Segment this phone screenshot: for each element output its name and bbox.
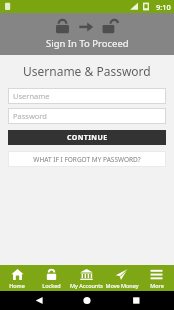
staticText: Username bbox=[13, 91, 50, 101]
staticText: Locked bbox=[42, 282, 61, 289]
button[interactable]: WHAT IF I FORGOT MY PASSWORD? bbox=[8, 151, 166, 167]
button[interactable]: Move Money bbox=[104, 265, 139, 291]
staticText: Password bbox=[13, 111, 47, 121]
button[interactable]: CONTINUE bbox=[8, 130, 166, 145]
staticText: WHAT IF I FORGOT MY PASSWORD? bbox=[33, 155, 141, 164]
staticText: Username & Password bbox=[23, 63, 151, 79]
button[interactable]: Username bbox=[8, 88, 166, 104]
button[interactable]: More bbox=[139, 265, 174, 291]
staticText: More bbox=[150, 282, 164, 289]
button[interactable]: My Accounts bbox=[69, 265, 104, 291]
button[interactable]: Password bbox=[8, 108, 166, 124]
staticText: My Accounts bbox=[70, 282, 103, 289]
staticText: CONTINUE bbox=[67, 133, 108, 143]
staticText: Move Money bbox=[105, 282, 139, 289]
staticText: Sign In To Proceed bbox=[46, 37, 129, 50]
button[interactable]: Locked bbox=[34, 265, 69, 291]
staticText: 9:10 bbox=[156, 2, 171, 12]
staticText: Home bbox=[9, 282, 25, 289]
button[interactable]: Home bbox=[0, 265, 34, 291]
